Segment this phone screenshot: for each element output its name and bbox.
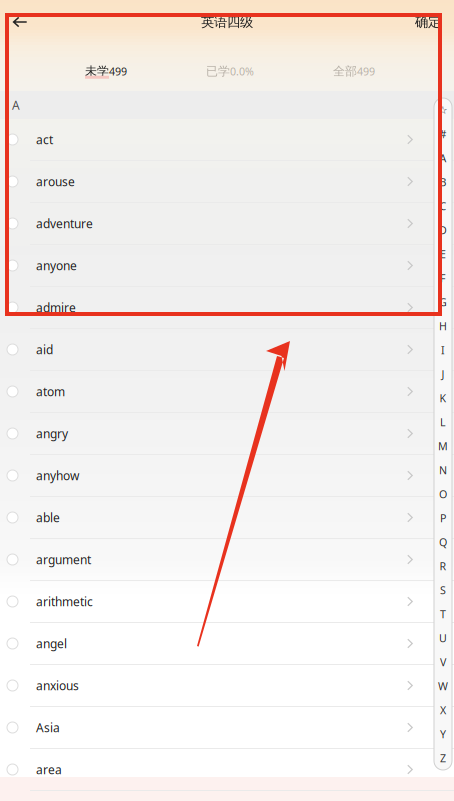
staticText: able [36,509,60,525]
button[interactable]: P [434,506,452,530]
button[interactable]: E [434,242,452,266]
staticText: 全部 [333,64,357,79]
staticText: J [441,367,444,381]
staticText: B [439,175,446,189]
button[interactable]: Asia [0,707,454,749]
staticText: E [440,247,446,261]
button[interactable]: T [434,602,452,626]
staticText: argument [36,551,91,567]
staticText: aid [36,341,53,357]
button[interactable]: Y [434,722,452,746]
staticText: anyone [36,257,77,273]
button[interactable]: U [434,626,452,650]
button[interactable]: N [434,458,452,482]
staticText: S [440,583,446,597]
button[interactable]: arouse [0,161,454,203]
button[interactable]: F [434,266,452,290]
button[interactable]: X [434,698,452,722]
button[interactable]: # [434,122,452,146]
staticText: 英语四级 [201,14,253,30]
button[interactable]: Z [434,746,452,770]
staticText: 0.0% [230,64,254,78]
button[interactable]: anyone [0,245,454,287]
button[interactable]: admire [0,287,454,329]
staticText: K [439,391,446,405]
button[interactable]: Q [434,530,452,554]
staticText: admire [36,299,76,315]
staticText: adventure [36,215,93,231]
button[interactable]: argument [0,539,454,581]
staticText: H [439,319,447,333]
staticText: Z [440,751,446,765]
button[interactable]: anxious [0,665,454,707]
staticText: Q [439,535,447,549]
staticText: Asia [36,719,60,735]
staticText: D [439,223,447,237]
staticText: act [36,131,53,147]
button[interactable]: C [434,194,452,218]
button[interactable]: S [434,578,452,602]
staticText: ☆ [438,104,448,116]
staticText: P [440,511,446,525]
staticText: atom [36,383,65,399]
button[interactable]: angel [0,623,454,665]
button[interactable]: Back [0,0,40,44]
staticText: T [440,607,446,621]
button[interactable]: 未学 [44,44,168,91]
staticText: 499 [109,64,127,78]
staticText: L [440,415,446,429]
staticText: R [439,559,446,573]
staticText: arouse [36,173,75,189]
button[interactable]: arithmetic [0,581,454,623]
button[interactable]: ☆ [434,98,452,122]
button[interactable]: O [434,482,452,506]
button[interactable]: G [434,290,452,314]
staticText: F [440,271,446,285]
button[interactable]: 全部 [292,44,416,91]
staticText: V [440,655,446,669]
staticText: U [439,631,447,645]
button[interactable]: 确定 [402,0,454,44]
button[interactable]: aid [0,329,454,371]
button[interactable]: area [0,749,454,791]
staticText: 499 [357,64,375,78]
button[interactable]: act [0,119,454,161]
staticText: 未学 [85,64,109,79]
button[interactable]: M [434,434,452,458]
staticText: G [439,295,447,309]
button[interactable]: K [434,386,452,410]
staticText: Y [440,727,446,741]
staticText: N [439,463,447,477]
staticText: area [36,761,62,777]
button[interactable]: atom [0,371,454,413]
button[interactable]: A [434,146,452,170]
button[interactable]: anyhow [0,455,454,497]
staticText: M [438,439,448,453]
button[interactable]: D [434,218,452,242]
button[interactable]: 已学 [168,44,292,91]
staticText: # [439,127,446,141]
staticText: 已学 [206,64,230,79]
staticText: angry [36,425,68,441]
staticText: C [439,199,446,213]
staticText: X [440,703,446,717]
button[interactable]: able [0,497,454,539]
button[interactable]: L [434,410,452,434]
button[interactable]: H [434,314,452,338]
button[interactable]: J [434,362,452,386]
button[interactable]: I [434,338,452,362]
staticText: 确定 [415,14,441,30]
staticText: arithmetic [36,593,93,609]
button[interactable]: angry [0,413,454,455]
staticText: anxious [36,677,79,693]
button[interactable]: W [434,674,452,698]
button[interactable]: V [434,650,452,674]
button[interactable]: R [434,554,452,578]
button[interactable]: B [434,170,452,194]
button[interactable]: adventure [0,203,454,245]
staticText: I [441,343,445,357]
staticText: angel [36,635,67,651]
staticText: A [12,97,20,113]
staticText: A [439,151,446,165]
staticText: W [438,679,448,693]
